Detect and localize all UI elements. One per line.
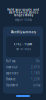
button[interactable]: Home indicator [16,95,30,97]
staticText: X7K2 - 9QM4 [13,43,32,46]
staticText: Expenses [6,71,18,75]
staticText: 2,410 [31,65,40,69]
staticText: Monthly summary [10,31,35,34]
staticText: Revenue [6,65,18,69]
staticText: Hold your couple and start making storie… [7,8,39,17]
staticText: On [36,59,40,63]
staticText: Balance [6,77,16,81]
staticText: Full tax [6,59,15,63]
staticText: today [33,83,40,87]
staticText: wagon today [14,18,31,21]
staticText: 1,230 [31,77,40,81]
staticText: 1,180 [31,71,40,75]
staticText: Updated [6,83,18,87]
staticText: tap to copy [15,47,30,51]
